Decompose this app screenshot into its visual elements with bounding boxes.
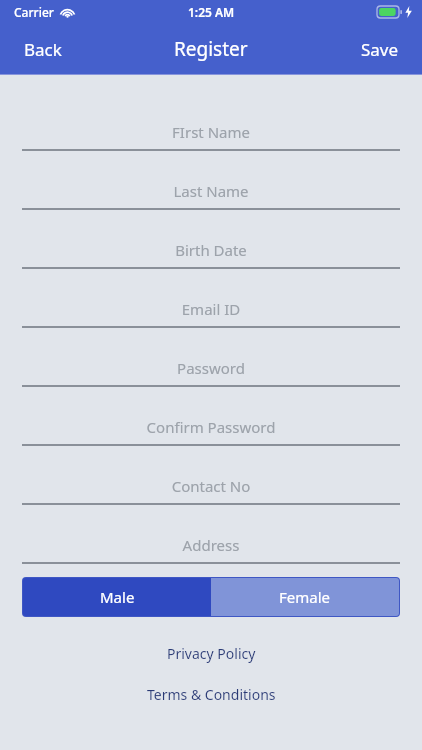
button[interactable]: Last Name [0,181,422,210]
button[interactable]: Privacy Policy [0,644,422,663]
button[interactable]: Terms & Conditions [0,685,422,704]
staticText: Address [0,535,422,555]
staticText: Back [24,38,62,61]
staticText: Birth Date [0,240,422,260]
button[interactable]: Save [338,28,422,71]
staticText: Female [279,587,331,607]
staticText: Contact No [0,476,422,496]
staticText: Password [0,358,422,378]
button[interactable]: FIrst Name [0,122,422,151]
button[interactable]: Female [211,578,399,616]
staticText: Email ID [0,299,422,319]
staticText: Register [174,36,248,62]
staticText: Confirm Password [0,417,422,437]
staticText: Last Name [0,181,422,201]
staticText: Carrier [14,4,54,20]
staticText: 1:25 AM [188,4,235,20]
button[interactable]: Confirm Password [0,417,422,446]
button[interactable]: Back [0,28,86,71]
staticText: Save [361,38,399,61]
button[interactable]: Password [0,358,422,387]
button[interactable]: Address [0,535,422,564]
staticText: Terms & Conditions [147,685,276,704]
button[interactable]: Contact No [0,476,422,505]
staticText: Male [100,587,135,607]
button[interactable]: Email ID [0,299,422,328]
button[interactable]: Male [23,578,211,616]
staticText: Privacy Policy [167,644,256,663]
staticText: FIrst Name [0,122,422,142]
button[interactable]: Birth Date [0,240,422,269]
